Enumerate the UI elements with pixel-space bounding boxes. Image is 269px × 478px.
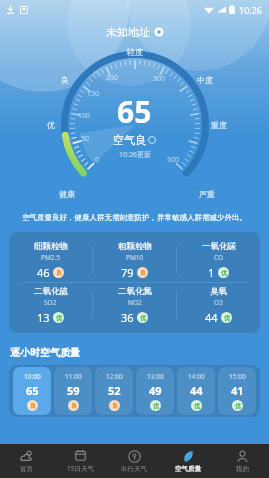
staticText: 65: [117, 91, 152, 132]
button[interactable]: 臭氧: [177, 283, 260, 327]
button[interactable]: 首页: [0, 444, 53, 478]
button[interactable]: 二氧化硫: [9, 283, 92, 327]
staticText: 41: [231, 383, 244, 398]
staticText: 粗颗粒物: [118, 241, 152, 252]
button[interactable]: 二氧化氮: [93, 283, 176, 327]
staticText: 一氧化碳: [202, 241, 236, 252]
staticText: 中度: [197, 75, 213, 85]
staticText: 细颗粒物: [34, 241, 68, 252]
staticText: 10:26更新: [119, 150, 151, 160]
staticText: 46: [37, 265, 50, 280]
staticText: 36: [121, 310, 134, 325]
button[interactable]: 15日天气: [53, 444, 107, 478]
staticText: 14:00: [188, 372, 205, 381]
staticText: 15日天气: [67, 464, 94, 473]
staticText: 优: [47, 120, 55, 130]
staticText: 15:00: [229, 372, 246, 381]
staticText: 良: [61, 75, 69, 85]
staticText: 79: [121, 265, 134, 280]
staticText: 优: [140, 314, 146, 322]
staticText: 13: [37, 310, 50, 325]
staticText: 健康: [59, 189, 75, 199]
staticText: 良: [71, 402, 77, 410]
staticText: 优: [221, 269, 227, 277]
button[interactable]: 空气质量: [161, 444, 215, 478]
staticText: 65: [26, 383, 39, 398]
staticText: 重度: [211, 120, 227, 130]
staticText: CO: [214, 253, 224, 262]
button[interactable]: 我的: [215, 444, 269, 478]
staticText: 良: [112, 402, 118, 410]
button[interactable]: 15:00: [218, 367, 256, 415]
staticText: 二氧化硫: [34, 286, 68, 297]
staticText: 优: [224, 314, 230, 322]
button[interactable]: 12:00: [95, 367, 133, 415]
staticText: 未知地址: [106, 25, 150, 39]
staticText: 52: [108, 383, 121, 398]
staticText: 轻度: [127, 47, 143, 57]
button[interactable]: 细颗粒物: [9, 238, 92, 282]
staticText: 出行天气: [121, 465, 147, 473]
button[interactable]: Change location: [154, 27, 164, 37]
button[interactable]: 一氧化碳: [177, 238, 260, 282]
staticText: PM2.5: [41, 253, 61, 262]
staticText: 44: [190, 383, 203, 398]
button[interactable]: 出行天气: [107, 444, 161, 478]
staticText: 150: [87, 89, 100, 99]
staticText: 良: [30, 402, 36, 410]
staticText: O3: [214, 298, 223, 307]
staticText: 我的: [236, 465, 249, 473]
staticText: 200: [106, 73, 119, 83]
button[interactable]: 14:00: [177, 367, 215, 415]
staticText: 良: [140, 269, 146, 277]
staticText: 优: [153, 402, 159, 410]
staticText: 逐小时空气质量: [10, 346, 80, 359]
staticText: SO2: [44, 298, 57, 307]
staticText: 100: [78, 111, 91, 121]
staticText: 0: [95, 155, 100, 165]
staticText: 10:00: [24, 372, 41, 381]
staticText: 12:00: [106, 372, 123, 381]
staticText: 首页: [20, 465, 33, 473]
staticText: 1: [208, 265, 215, 280]
staticText: 10:26: [239, 4, 263, 16]
button[interactable]: 粗颗粒物: [93, 238, 176, 282]
staticText: 良: [56, 269, 62, 277]
staticText: 二氧化氮: [118, 286, 152, 297]
staticText: 11:00: [65, 372, 82, 381]
staticText: 臭氧: [210, 286, 227, 297]
staticText: PM10: [126, 253, 144, 262]
staticText: 500: [167, 155, 180, 165]
button[interactable]: 11:00: [54, 367, 92, 415]
staticText: 空气良: [113, 133, 146, 147]
staticText: 13:00: [147, 372, 164, 381]
staticText: 严重: [199, 189, 215, 199]
staticText: 优: [235, 402, 241, 410]
button[interactable]: Air quality info: [148, 136, 156, 144]
staticText: NO2: [128, 298, 142, 307]
staticText: 优: [56, 314, 62, 322]
staticText: 300: [153, 74, 166, 84]
staticText: 优: [194, 402, 200, 410]
staticText: 50: [81, 134, 90, 144]
button[interactable]: 10:00: [13, 367, 51, 415]
staticText: 空气质量: [175, 465, 201, 473]
staticText: 59: [67, 383, 80, 398]
staticText: 44: [205, 310, 218, 325]
staticText: 49: [149, 383, 162, 398]
staticText: 空气质量良好，健康人群无需刻意防护，异常敏感人群需减少外出。: [8, 213, 261, 222]
button[interactable]: 13:00: [136, 367, 174, 415]
